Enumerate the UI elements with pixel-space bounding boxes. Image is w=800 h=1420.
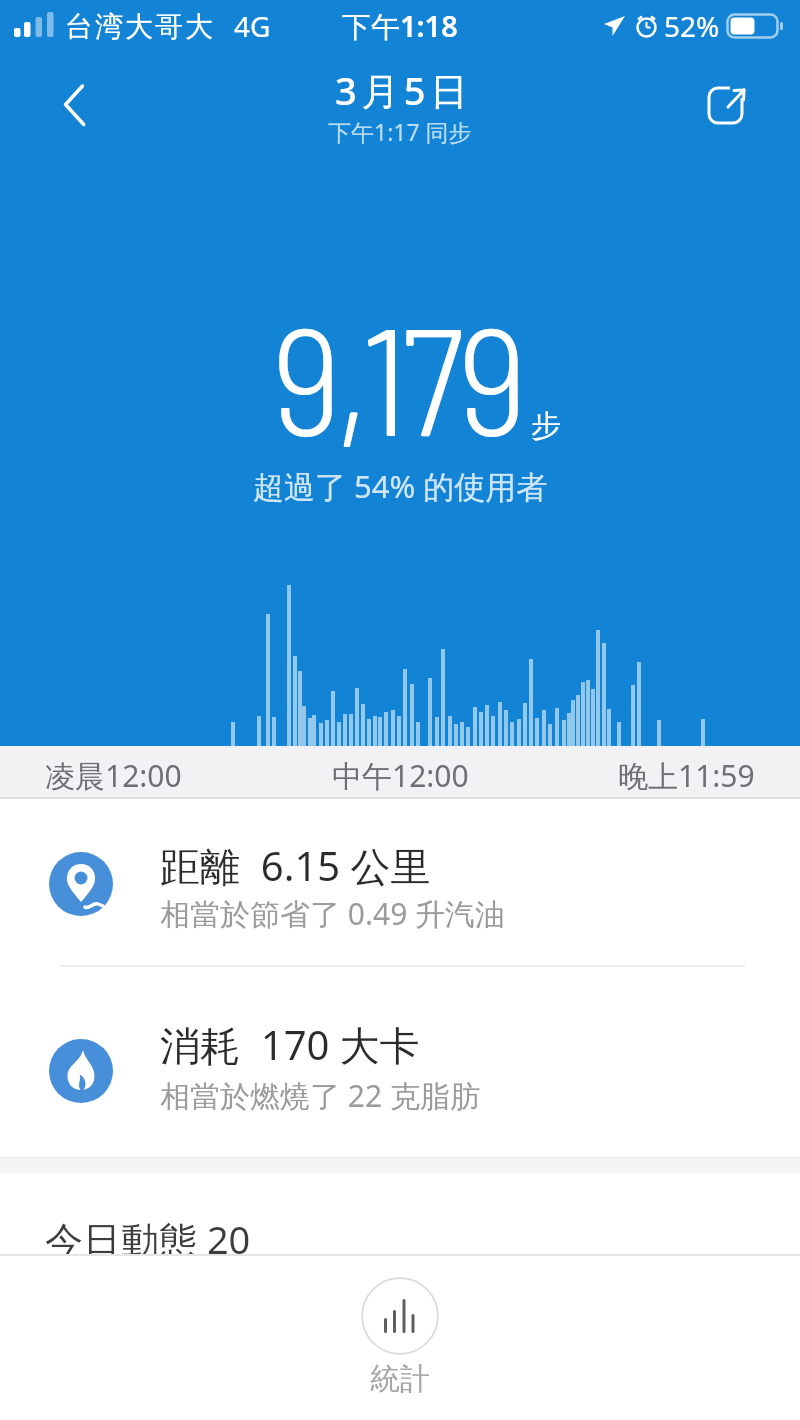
- button[interactable]: 距離 6.15 公里: [0, 798, 800, 966]
- staticText: 52%: [664, 7, 720, 45]
- staticText: 相當於節省了 0.49 升汽油: [160, 893, 506, 934]
- staticText: 晚上11:59: [618, 755, 755, 796]
- button[interactable]: 消耗 170 大卡: [0, 967, 800, 1157]
- staticText: 3月5日: [335, 64, 473, 116]
- button[interactable]: [361, 1277, 439, 1355]
- staticText: 相當於燃燒了 22 克脂肪: [160, 1075, 480, 1116]
- button[interactable]: [48, 76, 100, 132]
- staticText: 統計: [370, 1360, 430, 1398]
- staticText: 下午1:18: [342, 6, 458, 46]
- staticText: 消耗 170 大卡: [160, 1017, 420, 1072]
- staticText: 中午12:00: [332, 755, 469, 796]
- staticText: 下午1:17 同步: [328, 116, 472, 147]
- staticText: 4G: [234, 7, 271, 45]
- staticText: 步: [531, 407, 561, 445]
- staticText: 今日動態 20: [45, 1213, 251, 1265]
- staticText: 距離 6.15 公里: [160, 838, 431, 893]
- staticText: 凌晨12:00: [45, 755, 182, 796]
- button[interactable]: [704, 81, 756, 129]
- staticText: 9,179: [272, 284, 522, 466]
- staticText: 超過了 54% 的使用者: [253, 465, 548, 507]
- staticText: 台湾大哥大: [64, 9, 214, 44]
